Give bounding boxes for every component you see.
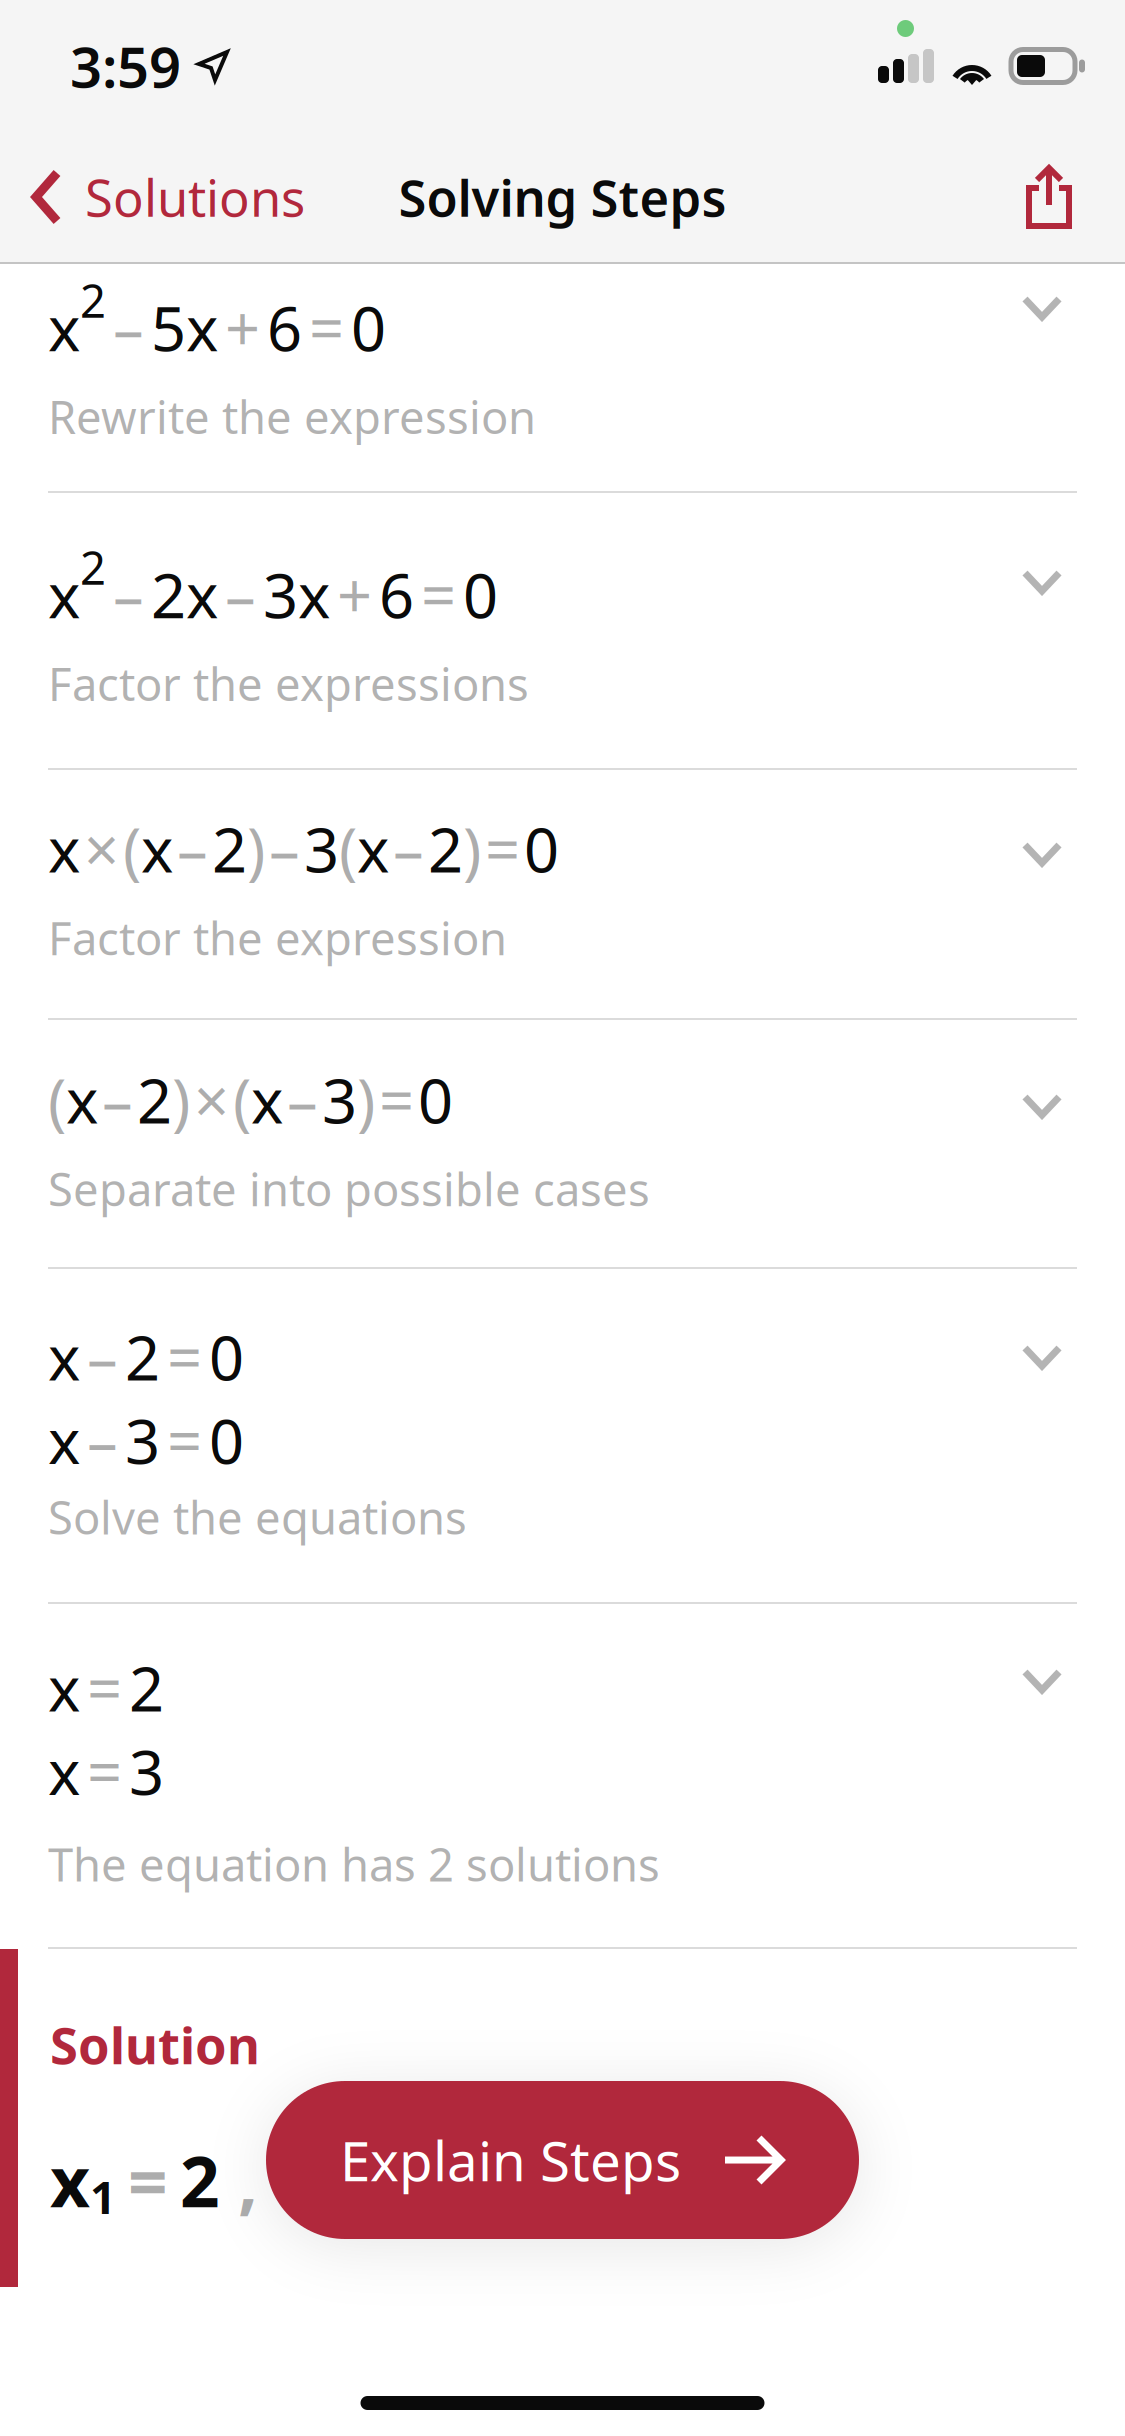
staticText: 3:59 xyxy=(70,29,181,103)
staticText: = xyxy=(485,808,520,889)
staticText: 2 xyxy=(212,808,247,889)
staticText: The equation has 2 solutions xyxy=(48,1834,660,1894)
staticText: 0 xyxy=(351,287,386,368)
staticText: = xyxy=(87,1730,122,1812)
staticText: × xyxy=(194,1059,229,1140)
staticText: Solution xyxy=(50,2011,260,2078)
staticText: = xyxy=(167,1316,202,1397)
staticText: × xyxy=(84,808,119,889)
staticText: – xyxy=(393,808,424,889)
staticText: = xyxy=(87,1647,122,1728)
staticText: 0 xyxy=(209,1399,244,1481)
staticText: 6 xyxy=(267,287,302,368)
staticText: 5x xyxy=(151,287,218,368)
staticText: 3 xyxy=(304,808,339,889)
staticText: ( xyxy=(233,1059,251,1140)
staticText: – xyxy=(87,1399,118,1481)
staticText: 2 xyxy=(129,1647,164,1728)
staticText: = xyxy=(421,554,456,635)
staticText: 1 xyxy=(90,2166,116,2226)
button[interactable]: Share xyxy=(995,132,1125,262)
staticText: 2 xyxy=(180,2134,220,2226)
staticText: 6 xyxy=(379,554,414,635)
staticText: = xyxy=(309,287,344,368)
staticText: 2 xyxy=(125,1316,160,1397)
staticText: Solutions xyxy=(85,163,305,231)
staticText: – xyxy=(287,1059,318,1140)
staticText: x xyxy=(66,1059,98,1140)
staticText: 2 xyxy=(428,808,463,889)
button[interactable]: x xyxy=(0,1269,1125,1602)
staticText: + xyxy=(225,287,260,368)
staticText: – xyxy=(113,287,144,368)
staticText: 2 xyxy=(137,1059,172,1140)
staticText: = xyxy=(128,2134,168,2226)
staticText: x xyxy=(48,1730,80,1812)
staticText: – xyxy=(177,808,208,889)
staticText: ) xyxy=(357,1059,375,1140)
staticText: Explain Steps xyxy=(340,2124,681,2196)
staticText: Rewrite the expression xyxy=(48,386,536,446)
staticText: Solve the equations xyxy=(48,1487,467,1547)
button[interactable]: x xyxy=(0,264,1125,491)
staticText: ) xyxy=(463,808,481,889)
staticText: 3 xyxy=(322,1059,357,1140)
staticText: 3x xyxy=(263,554,330,635)
staticText: x xyxy=(48,1647,80,1728)
staticText: x xyxy=(357,808,389,889)
staticText: = xyxy=(379,1059,414,1140)
staticText: Solving Steps xyxy=(398,163,726,231)
button[interactable]: x xyxy=(0,1604,1125,1947)
staticText: 2 xyxy=(80,270,106,330)
staticText: x xyxy=(48,1399,80,1481)
staticText: , xyxy=(238,2134,258,2226)
staticText: 0 xyxy=(209,1316,244,1397)
staticText: x xyxy=(141,808,173,889)
button[interactable]: ( xyxy=(0,1020,1125,1267)
staticText: Factor the expression xyxy=(48,907,507,968)
staticText: x xyxy=(48,1316,80,1397)
staticText: x xyxy=(50,2134,90,2226)
staticText: = xyxy=(167,1399,202,1481)
staticText: 0 xyxy=(463,554,498,635)
staticText: Separate into possible cases xyxy=(48,1158,650,1219)
staticText: – xyxy=(102,1059,133,1140)
staticText: 3 xyxy=(125,1399,160,1481)
staticText: 2 xyxy=(80,537,106,597)
staticText: x xyxy=(251,1059,283,1140)
staticText: Factor the expressions xyxy=(48,653,529,713)
staticText: 3 xyxy=(129,1730,164,1812)
button[interactable]: x xyxy=(0,770,1125,1018)
staticText: x xyxy=(48,554,80,635)
staticText: – xyxy=(113,554,144,635)
button[interactable]: Explain Steps xyxy=(266,2081,859,2239)
staticText: 2x xyxy=(151,554,218,635)
staticText: 0 xyxy=(524,808,559,889)
staticText: + xyxy=(337,554,372,635)
staticText: – xyxy=(225,554,256,635)
staticText: ( xyxy=(123,808,141,889)
staticText: 0 xyxy=(418,1059,453,1140)
button[interactable]: x xyxy=(0,493,1125,768)
staticText: x xyxy=(48,287,80,368)
staticText: x xyxy=(48,808,80,889)
staticText: ) xyxy=(172,1059,190,1140)
staticText: ) xyxy=(247,808,265,889)
staticText: – xyxy=(87,1316,118,1397)
staticText: ( xyxy=(48,1059,66,1140)
staticText: – xyxy=(269,808,300,889)
staticText: ( xyxy=(339,808,357,889)
button[interactable]: Solutions xyxy=(0,132,319,262)
